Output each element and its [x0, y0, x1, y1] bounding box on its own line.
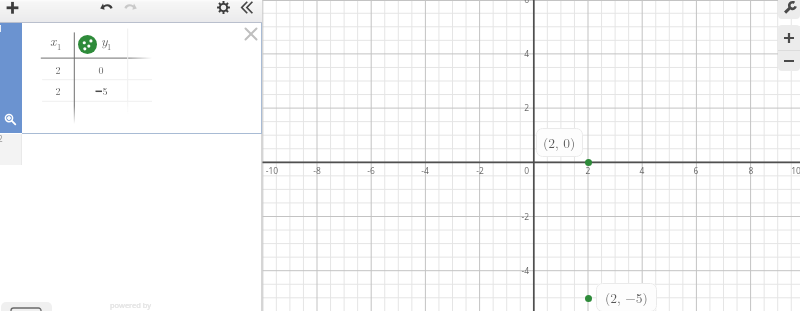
- staticText: 6: [502, 0, 529, 6]
- staticText: 0: [502, 165, 529, 177]
- button[interactable]: Undo: [98, 0, 116, 16]
- button[interactable]: Settings: [217, 1, 230, 14]
- button[interactable]: [22, 23, 262, 133]
- staticText: 4: [627, 165, 657, 177]
- staticText: 0: [91, 63, 111, 77]
- staticText: x: [50, 31, 57, 50]
- staticText: (2, 0): [543, 133, 576, 152]
- staticText: 5: [95, 84, 115, 98]
- staticText: 1: [107, 40, 112, 52]
- staticText: -10: [257, 165, 287, 177]
- button[interactable]: Delete table: [245, 28, 257, 40]
- staticText: 1: [57, 40, 62, 52]
- staticText: 6: [681, 165, 711, 177]
- staticText: 2: [48, 63, 68, 77]
- staticText: -6: [356, 165, 386, 177]
- button[interactable]: Zoom to fit: [3, 111, 17, 125]
- staticText: -2: [502, 211, 529, 223]
- staticText: 2: [573, 165, 603, 177]
- staticText: 2: [48, 84, 68, 98]
- staticText: 4: [502, 48, 529, 60]
- staticText: -8: [302, 165, 332, 177]
- staticText: 10: [781, 165, 800, 177]
- staticText: 1: [0, 23, 3, 34]
- staticText: (2, −5): [605, 288, 648, 307]
- staticText: -4: [410, 165, 440, 177]
- staticText: -2: [465, 165, 495, 177]
- button[interactable]: Collapse panel: [241, 1, 253, 14]
- button[interactable]: Keyboard: [1, 302, 52, 311]
- staticText: powered by: [110, 300, 152, 310]
- staticText: -4: [502, 265, 529, 277]
- button[interactable]: Redo: [121, 0, 139, 16]
- staticText: 8: [736, 165, 766, 177]
- button[interactable]: Add expression: [4, 0, 21, 16]
- staticText: y: [101, 31, 108, 50]
- button[interactable]: Graph settings: [778, 0, 800, 19]
- staticText: 2: [0, 133, 3, 144]
- staticText: 2: [502, 102, 529, 114]
- button[interactable]: Zoom out: [778, 51, 800, 71]
- button[interactable]: Zoom in: [778, 25, 800, 50]
